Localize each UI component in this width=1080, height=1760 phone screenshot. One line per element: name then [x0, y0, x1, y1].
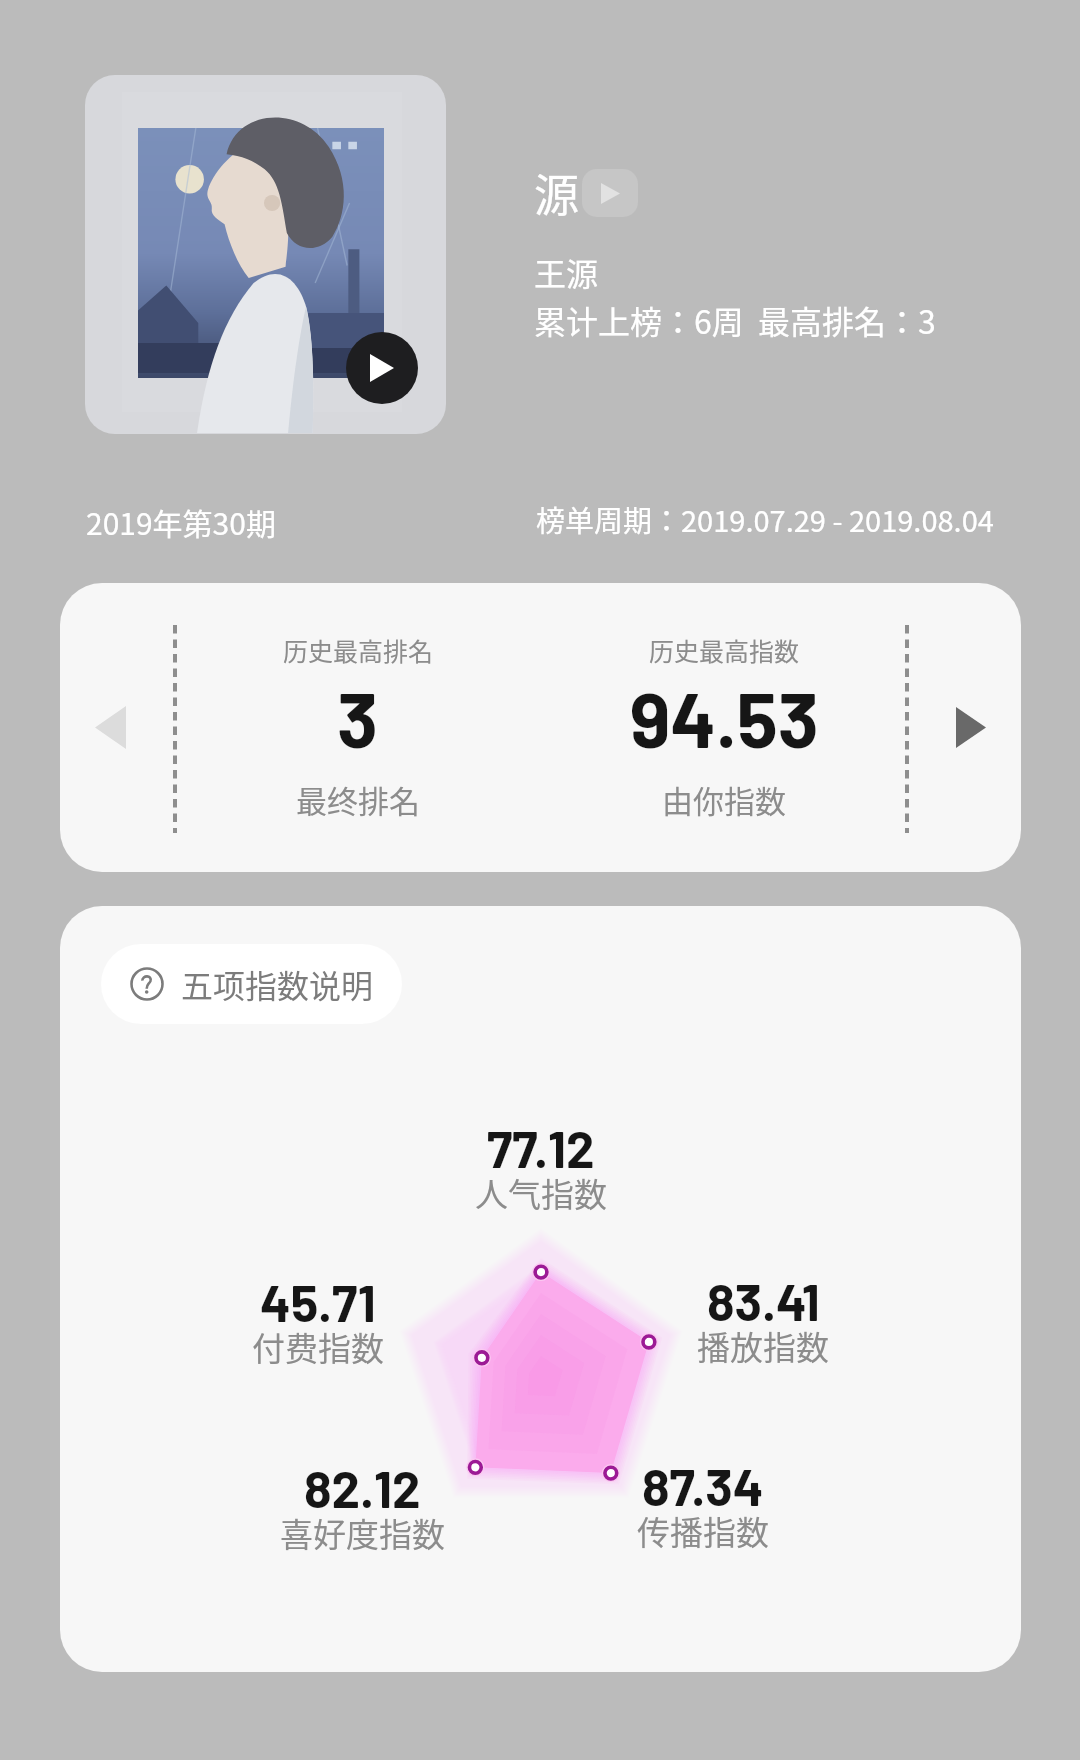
- staticText: 喜好度指数: [280, 1509, 445, 1557]
- button[interactable]: Play video: [582, 169, 638, 217]
- staticText: 人气指数: [475, 1169, 607, 1217]
- staticText: 3: [337, 672, 379, 763]
- staticText: 五项指数说明: [181, 961, 374, 1007]
- staticText: 2019年第30期: [86, 500, 276, 543]
- staticText: 累计上榜：6周 最高排名：3: [534, 297, 936, 343]
- staticText: 榜单周期：2019.07.29 - 2019.08.04: [536, 498, 994, 540]
- button[interactable]: Previous week: [60, 677, 160, 777]
- staticText: 由你指数: [662, 777, 786, 822]
- staticText: 播放指数: [697, 1322, 829, 1370]
- staticText: 传播指数: [637, 1507, 769, 1555]
- staticText: 历史最高排名: [283, 632, 434, 668]
- staticText: 45.71: [260, 1271, 376, 1332]
- staticText: 最终排名: [296, 777, 420, 822]
- button[interactable]: Play: [346, 332, 418, 404]
- staticText: 94.53: [630, 672, 819, 763]
- staticText: 82.12: [304, 1457, 421, 1518]
- staticText: 83.41: [707, 1270, 820, 1331]
- staticText: 付费指数: [252, 1323, 384, 1371]
- staticText: 87.34: [642, 1455, 764, 1516]
- button[interactable]: Next week: [921, 677, 1021, 777]
- button[interactable]: 五项指数说明: [101, 944, 402, 1024]
- staticText: 源: [534, 160, 580, 225]
- staticText: 77.12: [487, 1117, 595, 1178]
- staticText: 历史最高指数: [649, 632, 800, 668]
- button[interactable]: Album cover: [85, 75, 446, 434]
- staticText: 王源: [534, 249, 599, 295]
